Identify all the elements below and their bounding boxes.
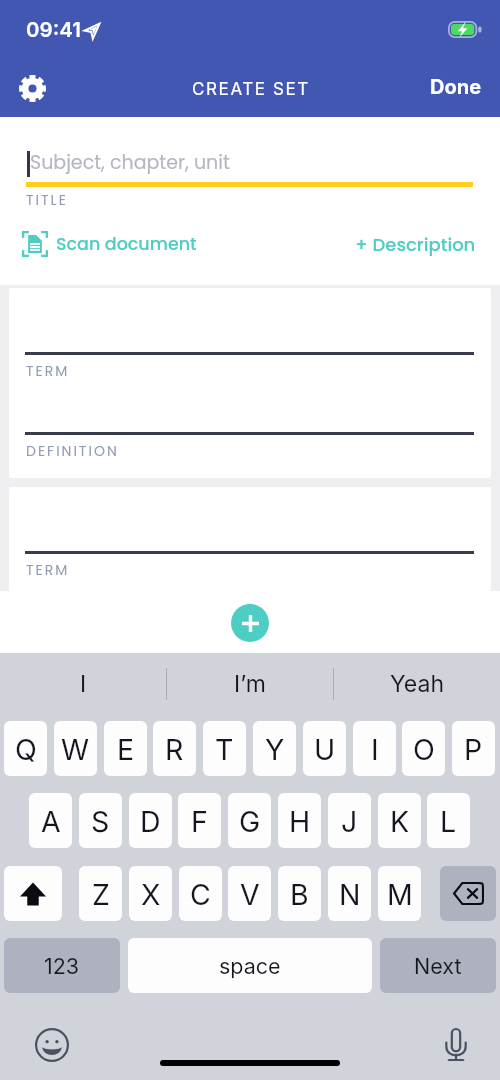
staticText: I xyxy=(371,732,379,766)
staticText: Done xyxy=(430,75,482,99)
staticText: I’m xyxy=(234,670,266,698)
staticText: R xyxy=(165,732,184,766)
button[interactable]: I’m xyxy=(167,653,333,714)
staticText: W xyxy=(61,732,90,766)
staticText: T xyxy=(215,732,234,766)
button[interactable]: S xyxy=(79,793,122,848)
button[interactable]: U xyxy=(303,721,346,776)
staticText: Y xyxy=(265,732,285,766)
button[interactable]: I xyxy=(353,721,396,776)
button[interactable]: J xyxy=(328,793,371,848)
staticText: F xyxy=(191,804,208,838)
button[interactable]: Y xyxy=(253,721,296,776)
button[interactable]: X xyxy=(129,866,172,921)
staticText: Z xyxy=(92,877,110,911)
staticText: Yeah xyxy=(390,670,444,698)
button[interactable]: H xyxy=(278,793,321,848)
button[interactable]: D xyxy=(129,793,172,848)
button[interactable]: Yeah xyxy=(334,653,500,714)
button[interactable]: B xyxy=(278,866,321,921)
staticText: + Description xyxy=(355,232,476,257)
button[interactable]: Add card xyxy=(231,604,269,642)
staticText: D xyxy=(140,804,161,838)
button[interactable]: R xyxy=(153,721,196,776)
button[interactable]: L xyxy=(427,793,470,848)
button[interactable]: TERM xyxy=(9,288,491,478)
staticText: Subject, chapter, unit xyxy=(30,149,230,176)
staticText: X xyxy=(141,877,161,911)
button[interactable]: space xyxy=(128,938,372,993)
button[interactable]: Done xyxy=(430,75,482,99)
button[interactable]: Z xyxy=(79,866,122,921)
staticText: TERM xyxy=(26,361,70,381)
staticText: G xyxy=(239,804,261,838)
staticText: CREATE SET xyxy=(192,79,310,100)
button[interactable]: Dictation xyxy=(432,1021,479,1068)
staticText: TERM xyxy=(26,560,70,580)
button[interactable]: M xyxy=(378,866,421,921)
staticText: S xyxy=(91,804,110,838)
button[interactable]: K xyxy=(378,793,421,848)
staticText: E xyxy=(117,732,135,766)
button[interactable]: TERM xyxy=(9,487,491,591)
button[interactable]: Next xyxy=(380,938,496,993)
button[interactable]: I xyxy=(0,653,166,714)
button[interactable]: T xyxy=(203,721,246,776)
staticText: J xyxy=(341,804,358,838)
staticText: N xyxy=(339,877,361,911)
staticText: Next xyxy=(414,953,462,979)
staticText: V xyxy=(240,877,260,911)
button[interactable]: F xyxy=(178,793,221,848)
button[interactable]: Scan document xyxy=(22,231,197,257)
staticText: O xyxy=(413,732,435,766)
staticText: 09:41 xyxy=(26,17,81,42)
staticText: space xyxy=(219,953,281,979)
staticText: TITLE xyxy=(26,190,68,210)
button[interactable]: Emoji keyboard xyxy=(28,1021,75,1068)
button[interactable]: Settings xyxy=(10,66,54,110)
button[interactable]: P xyxy=(452,721,495,776)
button[interactable]: A xyxy=(29,793,72,848)
button[interactable]: O xyxy=(402,721,445,776)
button[interactable]: C xyxy=(179,866,222,921)
staticText: DEFINITION xyxy=(26,441,119,461)
button[interactable]: Shift xyxy=(4,866,62,921)
button[interactable]: Q xyxy=(4,721,47,776)
staticText: M xyxy=(387,877,413,911)
button[interactable]: W xyxy=(54,721,97,776)
button[interactable]: V xyxy=(228,866,271,921)
button[interactable]: E xyxy=(104,721,147,776)
staticText: B xyxy=(290,877,309,911)
button[interactable]: 123 xyxy=(4,938,120,993)
staticText: K xyxy=(390,804,410,838)
staticText: Scan document xyxy=(56,232,197,257)
staticText: L xyxy=(440,804,457,838)
staticText: Q xyxy=(15,732,37,766)
staticText: 123 xyxy=(44,953,80,979)
staticText: A xyxy=(41,804,61,838)
button[interactable]: N xyxy=(328,866,371,921)
staticText: C xyxy=(190,877,211,911)
button[interactable]: + Description xyxy=(355,232,476,257)
button[interactable]: G xyxy=(228,793,271,848)
button[interactable]: Delete xyxy=(440,866,496,921)
staticText: I xyxy=(80,670,87,698)
staticText: U xyxy=(314,732,336,766)
staticText: P xyxy=(464,732,483,766)
staticText: H xyxy=(289,804,311,838)
